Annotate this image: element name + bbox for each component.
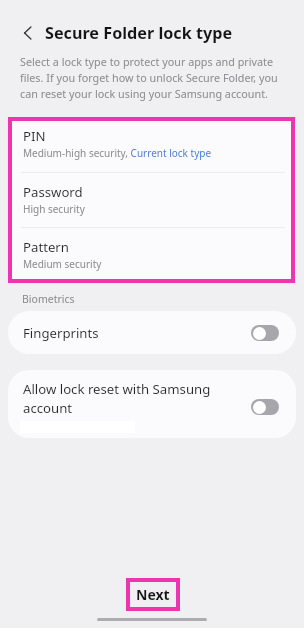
- staticText: Fingerprints: [23, 324, 99, 342]
- button[interactable]: Pattern: [12, 228, 291, 279]
- staticText: Secure Folder lock type: [45, 22, 233, 44]
- button[interactable]: PIN: [12, 121, 291, 172]
- staticText: Allow lock reset with Samsung account: [23, 380, 223, 417]
- button[interactable]: Next: [126, 578, 180, 611]
- button[interactable]: Password: [12, 173, 291, 227]
- staticText: Password: [23, 183, 83, 201]
- button[interactable]: Allow lock reset with Samsung account: [8, 370, 296, 438]
- staticText: Pattern: [23, 238, 69, 256]
- staticText: Medium security: [23, 257, 102, 271]
- staticText: Next: [136, 585, 170, 604]
- staticText: Select a lock type to protect your apps …: [20, 54, 292, 101]
- button[interactable]: Back: [12, 17, 44, 49]
- button[interactable]: Fingerprints toggle: [251, 325, 279, 341]
- staticText: Biometrics: [22, 292, 75, 306]
- button[interactable]: Fingerprints: [8, 311, 296, 354]
- button[interactable]: Allow lock reset with Samsung account to…: [251, 399, 279, 415]
- staticText: Medium-high security, Current lock type: [23, 146, 212, 160]
- staticText: High security: [23, 202, 85, 216]
- staticText: PIN: [23, 127, 46, 145]
